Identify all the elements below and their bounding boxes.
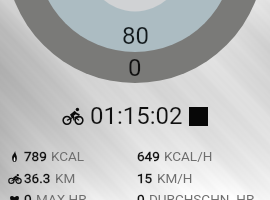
- staticText: 80: [122, 22, 149, 50]
- staticText: 649: [137, 148, 160, 164]
- staticText: 789: [24, 148, 47, 164]
- staticText: KM: [55, 170, 76, 186]
- staticText: 01:15:02: [90, 102, 183, 130]
- staticText: 0: [137, 191, 145, 200]
- staticText: 0: [128, 54, 142, 82]
- staticText: MAX HR: [36, 191, 87, 200]
- staticText: KCAL/H: [164, 148, 213, 164]
- staticText: DURCHSCHN. HR: [149, 191, 255, 200]
- staticText: 0: [24, 191, 32, 200]
- other: Cycling: [63, 107, 83, 125]
- staticText: KM/H: [157, 170, 193, 186]
- staticText: 15: [137, 170, 153, 186]
- staticText: KCAL: [51, 148, 85, 164]
- staticText: 36.3: [24, 170, 51, 186]
